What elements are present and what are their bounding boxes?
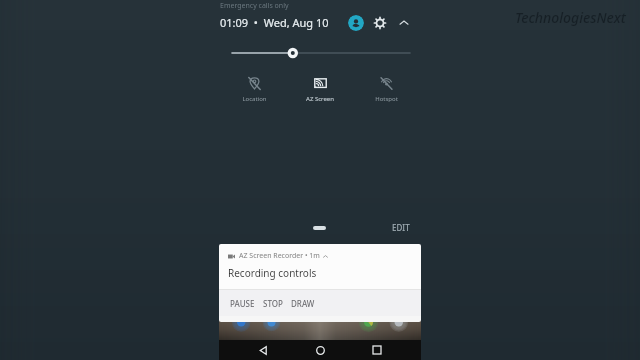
staticText: AZ Screen Recorder • 1m xyxy=(239,251,320,261)
button[interactable]: PAUSE xyxy=(226,290,259,316)
button[interactable]: AZ Screen Recorder xyxy=(294,74,346,110)
staticText: TechnologiesNext xyxy=(515,8,626,27)
button[interactable]: Hotspot xyxy=(360,74,412,110)
button[interactable]: Collapse xyxy=(396,15,412,31)
button[interactable]: Home xyxy=(298,340,342,360)
button[interactable]: STOP xyxy=(259,290,287,316)
button[interactable]: AZ Screen Recorder • 1m xyxy=(219,244,421,289)
button[interactable]: DRAW xyxy=(287,290,319,316)
button[interactable]: EDIT xyxy=(383,219,419,235)
button[interactable]: Location xyxy=(228,74,280,110)
button[interactable]: Drag handle xyxy=(313,226,326,230)
staticText: DRAW xyxy=(291,298,315,309)
staticText: STOP xyxy=(263,298,283,309)
staticText: 01:09 • Wed, Aug 10 xyxy=(220,15,329,30)
staticText: Location xyxy=(242,95,267,103)
staticText: Emergency calls only xyxy=(220,1,289,11)
staticText: PAUSE xyxy=(230,298,255,309)
button[interactable]: Brightness xyxy=(230,44,412,62)
staticText: EDIT xyxy=(392,222,410,233)
button[interactable]: Back xyxy=(241,340,285,360)
staticText: Recording controls xyxy=(228,266,317,280)
staticText: AZ Screen Recorder xyxy=(294,95,346,103)
button[interactable]: Recent apps xyxy=(355,340,399,360)
button[interactable]: User account xyxy=(348,15,364,31)
button[interactable]: Settings xyxy=(372,15,388,31)
staticText: Hotspot xyxy=(375,95,398,103)
